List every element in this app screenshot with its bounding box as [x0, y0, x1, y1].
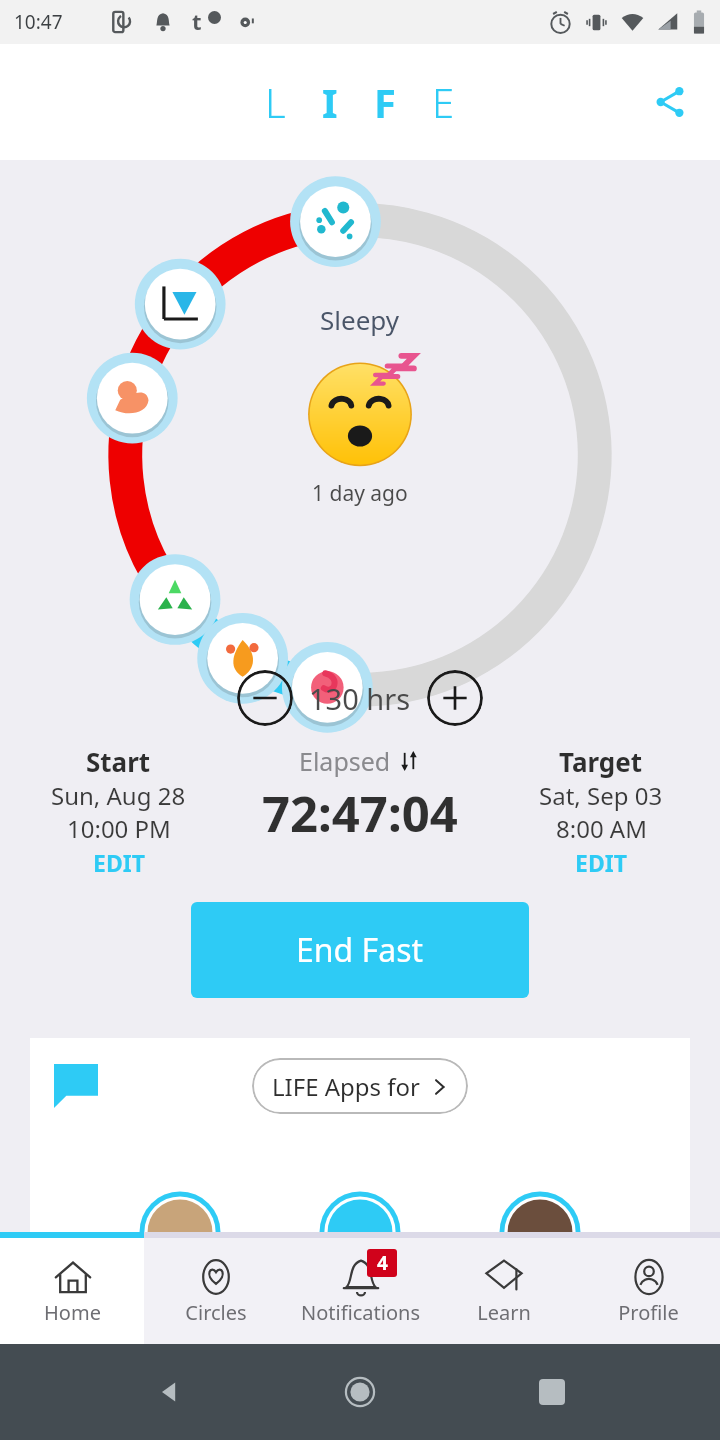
staticText: L — [265, 75, 286, 129]
button[interactable]: Profile — [576, 1238, 720, 1344]
staticText: End Fast — [296, 928, 424, 972]
button[interactable]: End Fast — [191, 902, 529, 998]
staticText: 8:00 AM — [556, 812, 647, 845]
button[interactable] — [136, 1174, 224, 1232]
staticText: 4 — [377, 1250, 388, 1276]
button[interactable]: Recents — [528, 1368, 576, 1416]
button[interactable]: Back — [144, 1368, 192, 1416]
button[interactable] — [316, 1174, 404, 1232]
button[interactable]: Share — [646, 78, 694, 126]
staticText: 130 hrs — [309, 679, 411, 718]
button[interactable]: Sleepy — [297, 302, 423, 508]
button[interactable]: EDIT — [565, 845, 637, 880]
staticText: Learn — [477, 1299, 531, 1326]
staticText: Circles — [185, 1299, 247, 1326]
staticText: Elapsed — [299, 744, 391, 778]
button[interactable]: Home — [0, 1238, 144, 1344]
staticText: 10:47 — [14, 9, 63, 35]
button[interactable]: Increase hours — [427, 670, 483, 726]
staticText: LIFE Apps for — [272, 1070, 421, 1103]
button[interactable]: EDIT — [83, 845, 155, 880]
staticText: EDIT — [93, 847, 145, 878]
button[interactable]: 4 — [288, 1238, 432, 1344]
staticText: F — [374, 75, 396, 129]
staticText: Sleepy — [320, 302, 400, 337]
staticText: 72:47:04 — [262, 780, 458, 847]
button[interactable] — [496, 1174, 584, 1232]
staticText: Sat, Sep 03 — [539, 779, 663, 812]
button[interactable]: LIFE Apps for — [30, 1038, 690, 1232]
staticText: t — [192, 6, 202, 36]
staticText: Profile — [618, 1299, 679, 1326]
button[interactable]: LIFE Apps for — [252, 1058, 468, 1114]
staticText: EDIT — [575, 847, 627, 878]
staticText: I — [322, 75, 338, 129]
staticText: Notifications — [301, 1299, 420, 1326]
button[interactable]: Circles — [144, 1238, 288, 1344]
staticText: Home — [44, 1299, 101, 1326]
button[interactable]: Learn — [432, 1238, 576, 1344]
staticText: Sun, Aug 28 — [51, 779, 186, 812]
staticText: Target — [559, 744, 643, 779]
staticText: 1 day ago — [312, 479, 408, 508]
button[interactable]: Decrease hours — [237, 670, 293, 726]
staticText: E — [432, 75, 455, 129]
button[interactable]: Swap elapsed — [397, 749, 421, 773]
button[interactable]: Home — [336, 1368, 384, 1416]
staticText: 10:00 PM — [67, 812, 171, 845]
staticText: Start — [86, 744, 151, 779]
